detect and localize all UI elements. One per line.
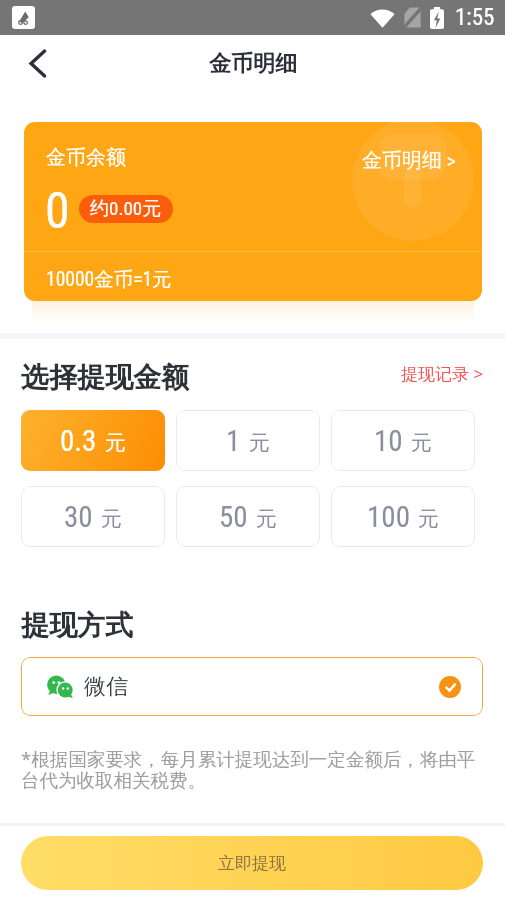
button[interactable]: 30 (21, 486, 165, 547)
staticText: *根据国家要求，每月累计提现达到一定金额后，将由平台代为收取相关税费。 (21, 746, 479, 793)
staticText: 约0.00元 (90, 197, 162, 221)
staticText: 立即提现 (218, 853, 286, 874)
staticText: 元 (418, 506, 439, 532)
button[interactable]: Back (15, 41, 59, 85)
staticText: 元 (411, 430, 432, 456)
staticText: 元 (256, 506, 277, 532)
staticText: 元 (105, 430, 126, 456)
staticText: 提现记录 > (401, 362, 484, 385)
button[interactable]: 0.3 (21, 410, 165, 471)
button[interactable]: 金币明细 (362, 148, 456, 173)
staticText: 50 (219, 500, 248, 534)
button[interactable]: 立即提现 (21, 836, 483, 890)
staticText: 10 (374, 424, 403, 458)
staticText: 元 (249, 430, 270, 456)
button[interactable]: 10 (331, 410, 475, 471)
staticText: 0 (45, 182, 70, 241)
staticText: 金币余额 (46, 145, 126, 170)
staticText: 30 (64, 500, 93, 534)
staticText: 1 (226, 424, 241, 458)
staticText: 元 (101, 506, 122, 532)
staticText: 选择提现金额 (21, 360, 189, 395)
staticText: 10000金币=1元 (46, 267, 172, 292)
staticText: 微信 (84, 673, 128, 701)
button[interactable]: 50 (176, 486, 320, 547)
button[interactable]: 提现记录 > (401, 362, 484, 385)
staticText: 金币明细 (362, 148, 442, 173)
button[interactable]: 微信 (21, 657, 483, 716)
staticText: 0.3 (60, 424, 97, 458)
staticText: 提现方式 (21, 608, 133, 643)
staticText: > (442, 149, 456, 172)
staticText: 金币明细 (209, 50, 297, 78)
staticText: 100 (367, 500, 410, 534)
button[interactable]: 100 (331, 486, 475, 547)
button[interactable]: 1 (176, 410, 320, 471)
staticText: 1:55 (455, 4, 495, 31)
